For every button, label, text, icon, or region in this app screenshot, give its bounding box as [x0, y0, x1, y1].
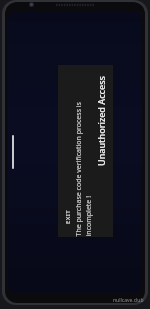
- staticText: nullcave.club: [113, 297, 144, 304]
- other: Home gesture bar: [12, 135, 14, 169]
- staticText: EXIT: [63, 209, 71, 224]
- staticText: The purchase code verification process i…: [73, 75, 93, 236]
- staticText: Unauthorized Access: [95, 76, 107, 166]
- button[interactable]: EXIT: [60, 206, 74, 229]
